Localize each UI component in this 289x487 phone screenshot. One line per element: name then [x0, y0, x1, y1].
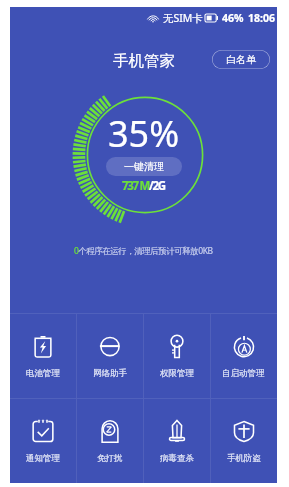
staticText: 手机管家 [113, 51, 175, 71]
staticText: 手机防盗 [227, 453, 261, 464]
button[interactable]: 病毒查杀 [143, 399, 210, 484]
button[interactable]: 自启动管理 [210, 314, 277, 398]
staticText: 网络助手 [93, 368, 127, 379]
staticText: 35% [108, 109, 180, 158]
staticText: 免打扰 [97, 453, 123, 464]
staticText: 737 M/2G [122, 178, 165, 194]
button[interactable]: 电池管理 [10, 314, 76, 398]
button[interactable]: 一键清理 [106, 157, 182, 176]
staticText: 一键清理 [124, 160, 164, 173]
staticText: 病毒查杀 [160, 453, 194, 464]
staticText: 通知管理 [26, 453, 60, 464]
button[interactable]: 白名单 [212, 50, 270, 69]
button[interactable]: 权限管理 [143, 314, 210, 398]
staticText: 电池管理 [26, 368, 60, 379]
staticText: 白名单 [226, 53, 256, 66]
staticText: 无SIM卡 [163, 11, 203, 25]
button[interactable]: 通知管理 [10, 399, 76, 484]
staticText: 0个程序在运行，清理后预计可释放0KB [74, 245, 213, 257]
button[interactable]: 网络助手 [76, 314, 143, 398]
staticText: 46% [222, 11, 244, 25]
button[interactable]: 免打扰 [76, 399, 143, 484]
staticText: 权限管理 [160, 368, 194, 379]
button[interactable]: 手机防盗 [210, 399, 277, 484]
staticText: 18:06 [248, 11, 275, 25]
staticText: 自启动管理 [222, 368, 265, 379]
